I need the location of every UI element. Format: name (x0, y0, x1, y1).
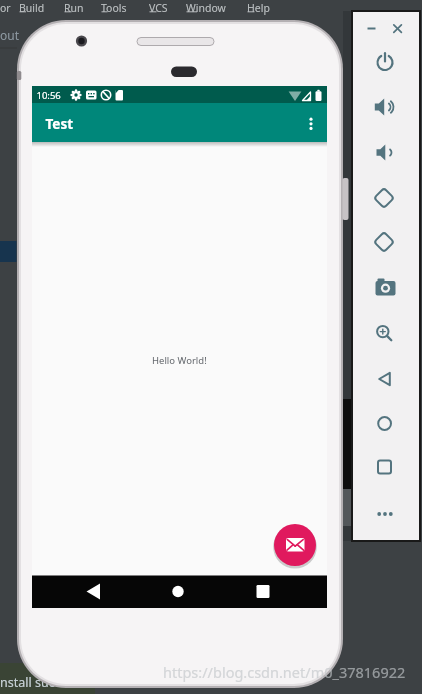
button[interactable] (141, 0, 178, 14)
button[interactable] (62, 575, 120, 608)
button[interactable] (178, 0, 235, 14)
button[interactable] (367, 270, 403, 306)
button[interactable] (274, 524, 316, 566)
button[interactable] (239, 0, 274, 14)
button[interactable] (367, 405, 403, 441)
button[interactable] (367, 496, 403, 532)
button[interactable] (18, 0, 55, 14)
button[interactable] (367, 44, 403, 80)
button[interactable] (389, 21, 405, 37)
button[interactable] (367, 361, 403, 397)
button[interactable] (363, 21, 379, 37)
button[interactable] (367, 224, 403, 260)
button[interactable] (367, 449, 403, 485)
button[interactable] (367, 89, 403, 125)
button[interactable] (98, 0, 139, 14)
button[interactable] (367, 134, 403, 170)
button[interactable] (297, 103, 327, 142)
button[interactable] (63, 0, 94, 14)
button[interactable] (234, 575, 292, 608)
button[interactable] (367, 180, 403, 216)
button[interactable] (149, 575, 207, 608)
button[interactable] (367, 316, 403, 352)
